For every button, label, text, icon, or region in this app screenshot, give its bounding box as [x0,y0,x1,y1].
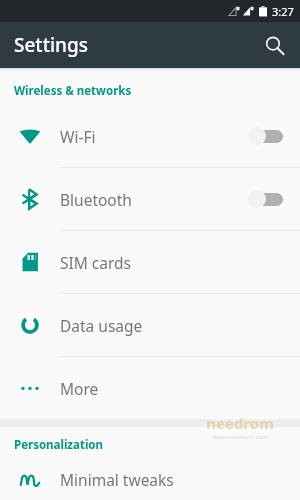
staticText: Personalization [14,437,103,453]
staticText: Wireless & networks [14,83,132,99]
staticText: Wi-Fi [60,126,248,147]
button[interactable]: Bluetooth [0,168,300,231]
button[interactable]: Wi-Fi [0,105,300,168]
staticText: www.needrom.com [212,433,268,441]
button[interactable]: Minimal tweaks [0,459,300,500]
button[interactable]: Data usage [0,294,300,357]
staticText: 3:27 [272,4,294,19]
button[interactable]: More [0,357,300,419]
button[interactable]: SIM cards [0,231,300,294]
staticText: Data usage [60,315,300,336]
staticText: More [60,378,300,399]
staticText: needrom [206,413,274,433]
staticText: Bluetooth [60,189,248,210]
button[interactable]: Search [254,25,294,65]
staticText: SIM cards [60,252,300,273]
staticText: Minimal tweaks [60,469,300,490]
staticText: Settings [14,32,88,58]
